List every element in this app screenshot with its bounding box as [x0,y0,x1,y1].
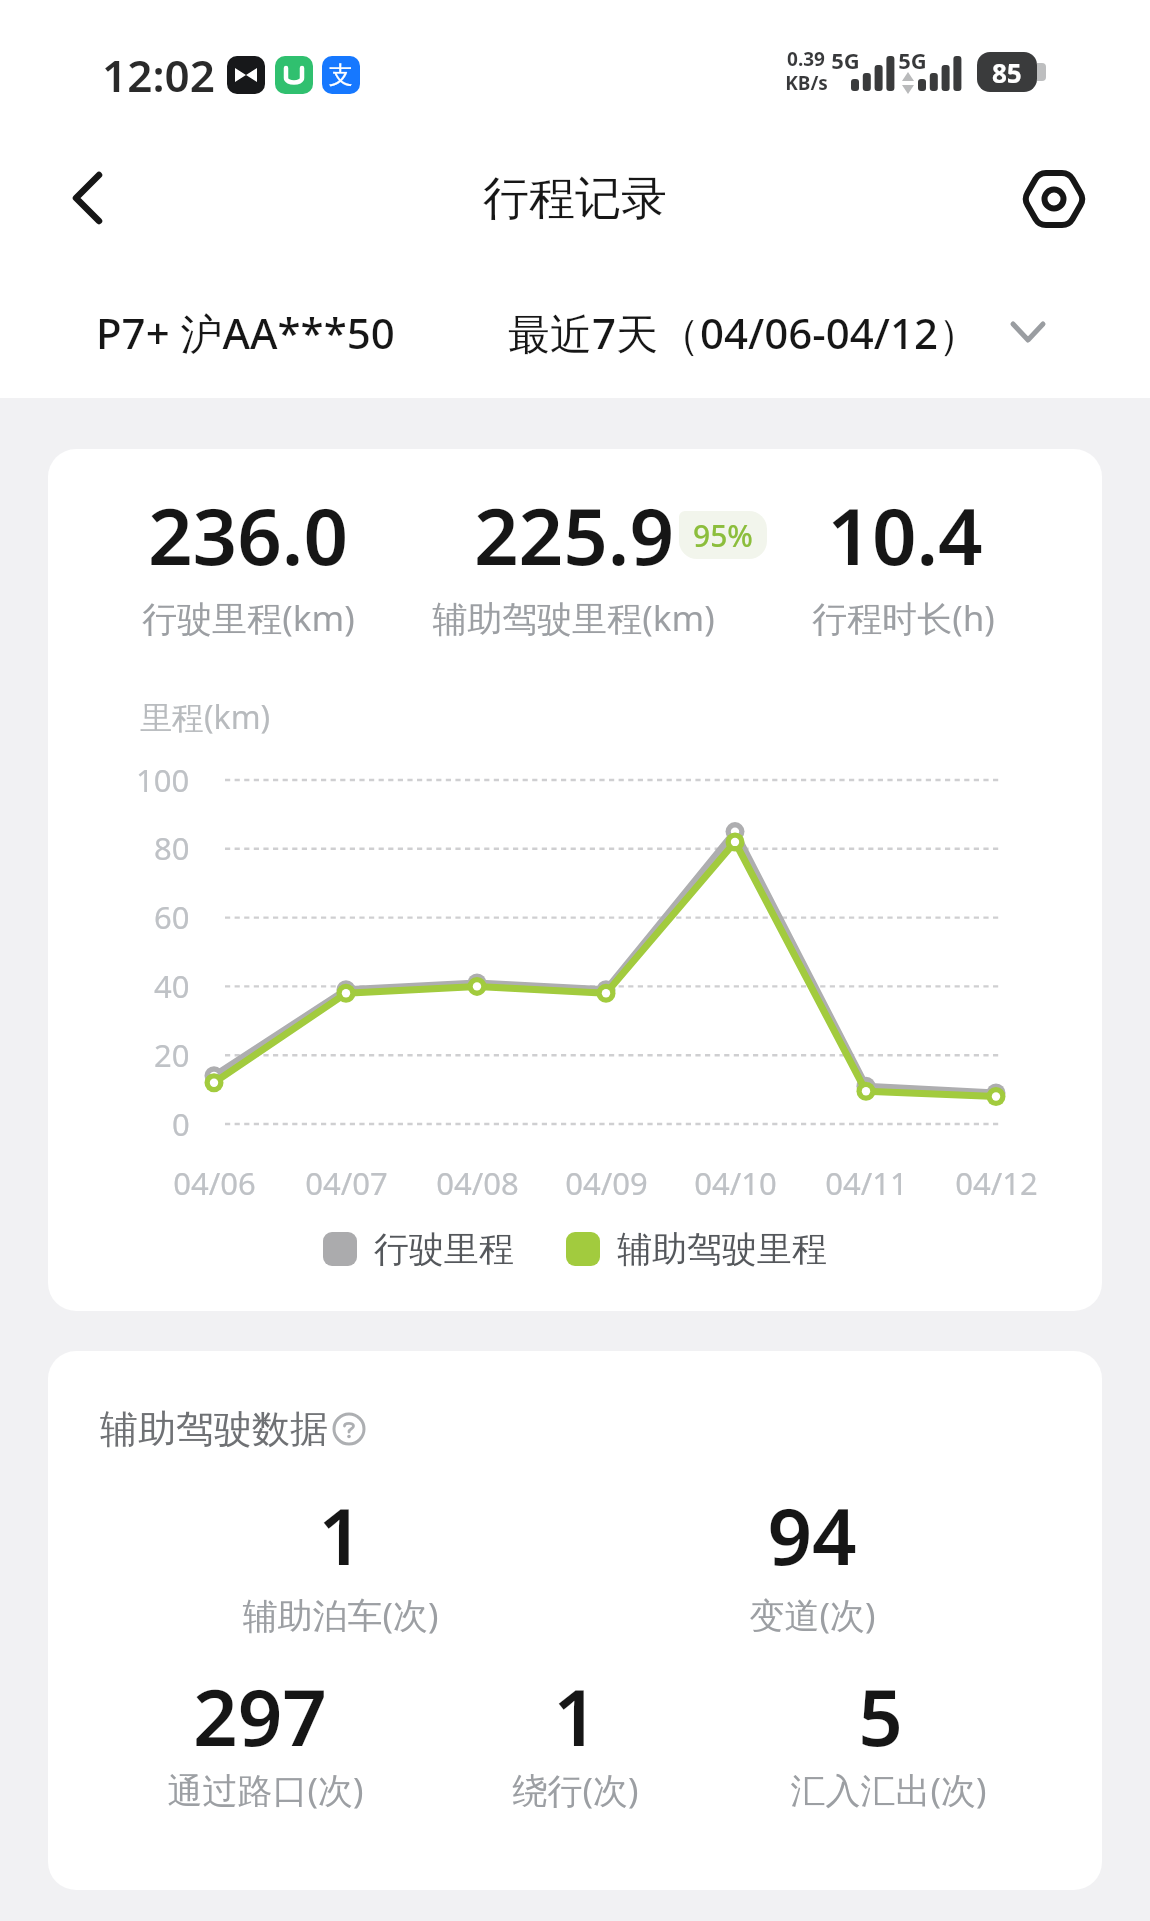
staticText: 04/12 [955,1162,1038,1204]
staticText: 04/07 [305,1162,388,1204]
staticText: KB/s [785,70,828,96]
staticText: 5G [831,45,860,75]
staticText: 80 [154,827,190,869]
staticText: 行程时长(h) [812,594,995,642]
staticText: 04/06 [173,1162,256,1204]
staticText: 225.9 [474,482,674,588]
staticText: 绕行(次) [512,1766,639,1814]
button[interactable]: 辅助驾驶数据 [100,1405,365,1453]
button[interactable] [1022,166,1086,230]
staticText: 5G [898,45,927,75]
staticText: 297 [193,1663,327,1769]
staticText: 85 [992,55,1022,90]
staticText: 236.0 [148,482,348,588]
staticText: 40 [154,965,190,1007]
staticText: 20 [154,1034,190,1076]
staticText: 5 [858,1663,903,1769]
staticText: 04/10 [694,1162,777,1204]
staticText: 辅助泊车(次) [242,1591,439,1639]
staticText: 100 [136,759,190,801]
staticText: 1 [553,1663,598,1769]
staticText: 0 [172,1103,190,1145]
staticText: 辅助驾驶里程 [617,1227,827,1271]
staticText: 04/11 [825,1162,908,1204]
staticText: 行驶里程 [374,1227,514,1271]
button[interactable]: P7+ 沪AA***50 [96,300,395,364]
staticText: 汇入汇出(次) [790,1766,987,1814]
staticText: 04/09 [565,1162,648,1204]
staticText: 0.39 [787,46,825,72]
staticText: 94 [767,1482,857,1588]
button[interactable]: 行驶里程 [323,1227,827,1271]
staticText: 支 [329,60,353,90]
staticText: 行程记录 [483,170,667,228]
staticText: 通过路口(次) [167,1766,364,1814]
staticText: 辅助驾驶数据 [100,1405,328,1453]
staticText: 60 [154,896,190,938]
staticText: 10.4 [827,482,983,588]
staticText: 最近7天（04/06-04/12） [508,304,981,361]
staticText: 04/08 [436,1162,519,1204]
staticText: 12:02 [102,45,215,105]
staticText: 1 [318,1482,363,1588]
staticText: 行驶里程(km) [142,594,355,642]
button[interactable]: 最近7天（04/06-04/12） [508,300,981,364]
button[interactable] [56,166,120,230]
staticText: 里程(km) [140,695,271,739]
staticText: 95% [693,515,753,556]
staticText: P7+ 沪AA***50 [96,304,395,361]
staticText: 变道(次) [749,1591,876,1639]
staticText: 辅助驾驶里程(km) [432,594,715,642]
